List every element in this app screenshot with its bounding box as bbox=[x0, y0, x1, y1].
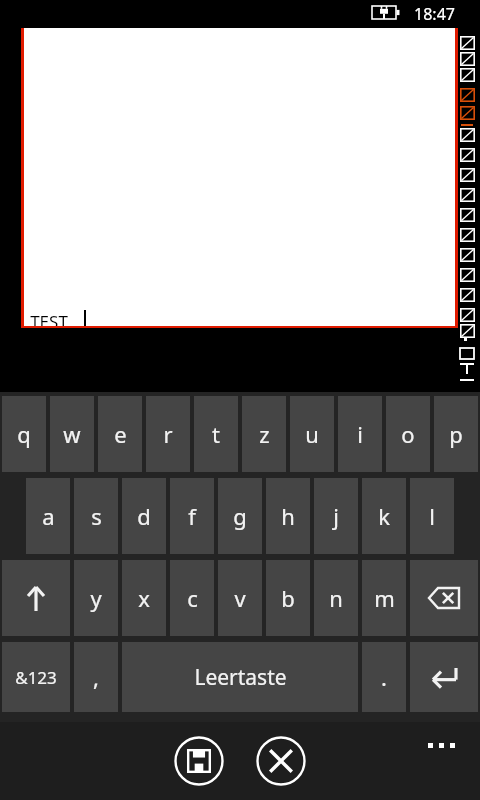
button[interactable]: g bbox=[218, 478, 262, 554]
button[interactable]: e bbox=[98, 396, 142, 472]
staticText: u bbox=[305, 419, 319, 449]
staticText: p bbox=[449, 419, 463, 449]
button[interactable]: f bbox=[170, 478, 214, 554]
staticText: e bbox=[114, 419, 127, 449]
staticText: d bbox=[137, 501, 151, 531]
staticText: m bbox=[374, 583, 395, 613]
staticText: h bbox=[281, 501, 295, 531]
staticText: w bbox=[63, 419, 81, 449]
staticText: l bbox=[429, 501, 435, 531]
staticText: Leertaste bbox=[194, 663, 287, 692]
button[interactable]: q bbox=[2, 396, 46, 472]
button[interactable]: s bbox=[74, 478, 118, 554]
staticText: t bbox=[212, 419, 220, 449]
button[interactable]: a bbox=[26, 478, 70, 554]
staticText: j bbox=[333, 501, 339, 531]
button[interactable]: x bbox=[122, 560, 166, 636]
staticText: k bbox=[378, 501, 390, 531]
button[interactable]: h bbox=[266, 478, 310, 554]
staticText: n bbox=[329, 583, 343, 613]
button[interactable]: k bbox=[362, 478, 406, 554]
staticText: , bbox=[93, 662, 99, 692]
button[interactable]: Leertaste bbox=[122, 642, 358, 712]
button[interactable]: l bbox=[410, 478, 454, 554]
staticText: c bbox=[187, 583, 198, 613]
staticText: . bbox=[381, 662, 387, 692]
staticText: v bbox=[234, 583, 246, 613]
button[interactable]: p bbox=[434, 396, 478, 472]
button[interactable]: y bbox=[74, 560, 118, 636]
button[interactable]: t bbox=[194, 396, 238, 472]
button[interactable]: Enter bbox=[410, 642, 478, 712]
staticText: b bbox=[281, 583, 295, 613]
button[interactable] bbox=[2, 560, 70, 636]
button[interactable]: Save bbox=[172, 734, 226, 788]
staticText: a bbox=[42, 501, 55, 531]
button[interactable]: i bbox=[338, 396, 382, 472]
staticText: z bbox=[259, 419, 270, 449]
button[interactable]: c bbox=[170, 560, 214, 636]
button[interactable]: o bbox=[386, 396, 430, 472]
button[interactable]: . bbox=[362, 642, 406, 712]
button[interactable]: Backspace bbox=[410, 560, 478, 636]
button[interactable]: j bbox=[314, 478, 358, 554]
button[interactable]: n bbox=[314, 560, 358, 636]
button[interactable]: &123 bbox=[2, 642, 70, 712]
staticText: x bbox=[138, 583, 150, 613]
button[interactable]: w bbox=[50, 396, 94, 472]
staticText: &123 bbox=[15, 666, 57, 689]
staticText: s bbox=[91, 501, 102, 531]
button[interactable]: More options bbox=[418, 730, 464, 760]
staticText: f bbox=[188, 501, 196, 531]
button[interactable]: v bbox=[218, 560, 262, 636]
button[interactable]: b bbox=[266, 560, 310, 636]
staticText: g bbox=[233, 501, 247, 531]
button[interactable]: r bbox=[146, 396, 190, 472]
staticText: 18:47 bbox=[414, 3, 455, 25]
staticText: o bbox=[401, 419, 415, 449]
button[interactable] bbox=[24, 28, 455, 326]
button[interactable]: m bbox=[362, 560, 406, 636]
staticText: TEST bbox=[30, 310, 68, 326]
button[interactable]: z bbox=[242, 396, 286, 472]
button[interactable]: u bbox=[290, 396, 334, 472]
button[interactable]: Cancel bbox=[254, 734, 308, 788]
staticText: q bbox=[17, 419, 31, 449]
button[interactable]: , bbox=[74, 642, 118, 712]
staticText: i bbox=[357, 419, 363, 449]
staticText: y bbox=[90, 583, 102, 613]
button[interactable]: d bbox=[122, 478, 166, 554]
staticText: r bbox=[163, 419, 173, 449]
